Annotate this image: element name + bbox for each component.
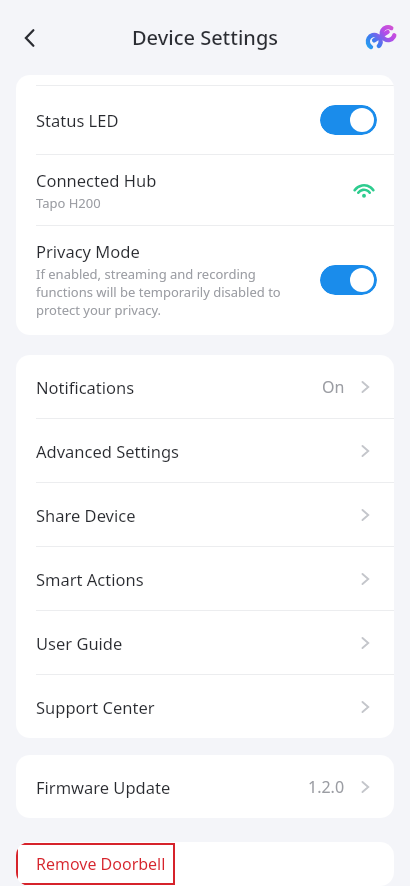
button[interactable]: Support Center xyxy=(16,675,394,738)
button[interactable]: Back xyxy=(8,16,52,60)
staticText: Device Settings xyxy=(132,24,278,51)
staticText: Connected Hub xyxy=(36,169,157,191)
staticText: Firmware Update xyxy=(36,776,171,798)
button[interactable]: Share Device xyxy=(16,483,394,546)
staticText: Smart Actions xyxy=(36,568,144,590)
button[interactable]: User Guide xyxy=(16,611,394,674)
button[interactable]: Status LED xyxy=(16,86,394,154)
button[interactable]: Firmware Update xyxy=(16,755,394,818)
staticText: Remove Doorbell xyxy=(36,853,166,875)
staticText: Advanced Settings xyxy=(36,440,179,462)
button[interactable]: Toggle xyxy=(320,105,377,135)
staticText: If enabled, streaming and recording func… xyxy=(36,265,298,319)
button[interactable]: Tapo xyxy=(360,17,402,59)
staticText: Share Device xyxy=(36,504,136,526)
staticText: User Guide xyxy=(36,632,123,654)
button[interactable]: Notifications xyxy=(16,355,394,418)
button[interactable]: Advanced Settings xyxy=(16,419,394,482)
staticText: Status LED xyxy=(36,109,119,131)
staticText: On xyxy=(322,376,345,398)
staticText: Notifications xyxy=(36,376,135,398)
staticText: Support Center xyxy=(36,696,155,718)
staticText: Privacy Mode xyxy=(36,240,140,262)
button[interactable]: Connected Hub xyxy=(16,155,394,225)
button[interactable]: Toggle xyxy=(320,265,377,295)
button[interactable]: Smart Actions xyxy=(16,547,394,610)
staticText: Tapo H200 xyxy=(36,194,101,212)
staticText: 1.2.0 xyxy=(308,776,345,798)
button[interactable]: Privacy Mode xyxy=(16,226,394,335)
button[interactable]: Remove Doorbell xyxy=(16,843,175,885)
